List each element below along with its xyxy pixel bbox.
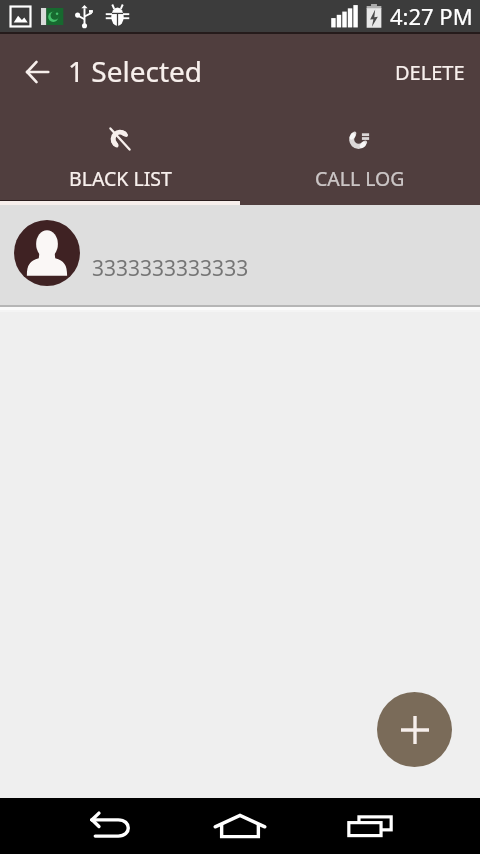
staticText: 1 Selected xyxy=(68,52,203,90)
button[interactable]: Back xyxy=(13,48,61,96)
staticText: BLACK LIST xyxy=(69,165,172,192)
staticText: CALL LOG xyxy=(315,165,405,192)
button[interactable]: DELETE xyxy=(377,34,480,110)
staticText: 4:27 PM xyxy=(390,1,473,31)
button[interactable]: Add xyxy=(377,692,452,767)
button[interactable]: Recent apps xyxy=(322,798,418,854)
button[interactable]: CALL LOG xyxy=(240,110,480,205)
button[interactable]: BLACK LIST xyxy=(0,110,240,205)
staticText: DELETE xyxy=(395,59,465,86)
button[interactable]: Home xyxy=(188,798,292,854)
staticText: 3333333333333 xyxy=(92,254,249,283)
button[interactable]: Back xyxy=(62,798,158,854)
button[interactable]: 3333333333333 xyxy=(0,205,480,307)
